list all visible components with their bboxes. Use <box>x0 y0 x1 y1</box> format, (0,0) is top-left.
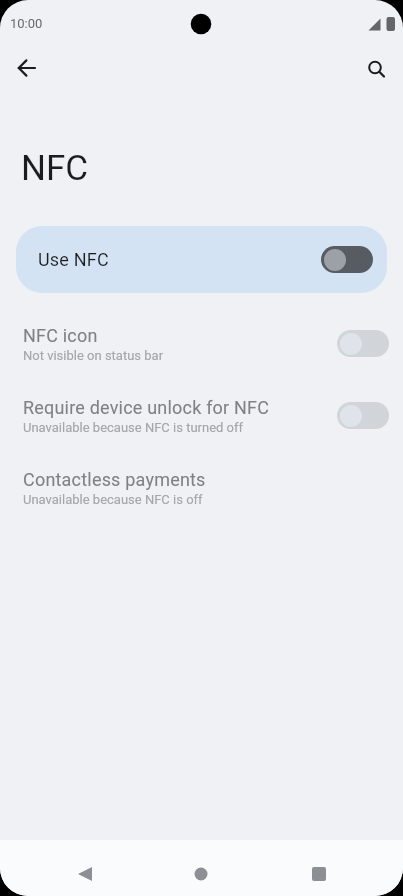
button[interactable]: Contactless payments <box>0 452 403 524</box>
button[interactable]: Require device unlock for NFC <box>0 380 403 452</box>
button[interactable]: Use NFC <box>16 226 387 293</box>
staticText: Contactless payments <box>23 469 206 490</box>
staticText: Unavailable because NFC is turned off <box>23 420 244 435</box>
button[interactable] <box>3 44 51 92</box>
button[interactable] <box>321 246 373 273</box>
staticText: Use NFC <box>38 249 321 270</box>
button[interactable] <box>337 402 389 429</box>
button[interactable] <box>337 330 389 357</box>
button[interactable]: NFC icon <box>0 308 403 380</box>
button[interactable] <box>295 850 343 896</box>
staticText: Unavailable because NFC is off <box>23 492 203 507</box>
staticText: Not visible on status bar <box>23 348 164 363</box>
staticText: 10:00 <box>10 16 43 31</box>
button[interactable] <box>177 850 225 896</box>
staticText: Require device unlock for NFC <box>23 397 270 418</box>
button[interactable] <box>353 46 401 94</box>
staticText: NFC icon <box>23 325 98 346</box>
button[interactable] <box>61 850 109 896</box>
staticText: NFC <box>21 148 89 189</box>
